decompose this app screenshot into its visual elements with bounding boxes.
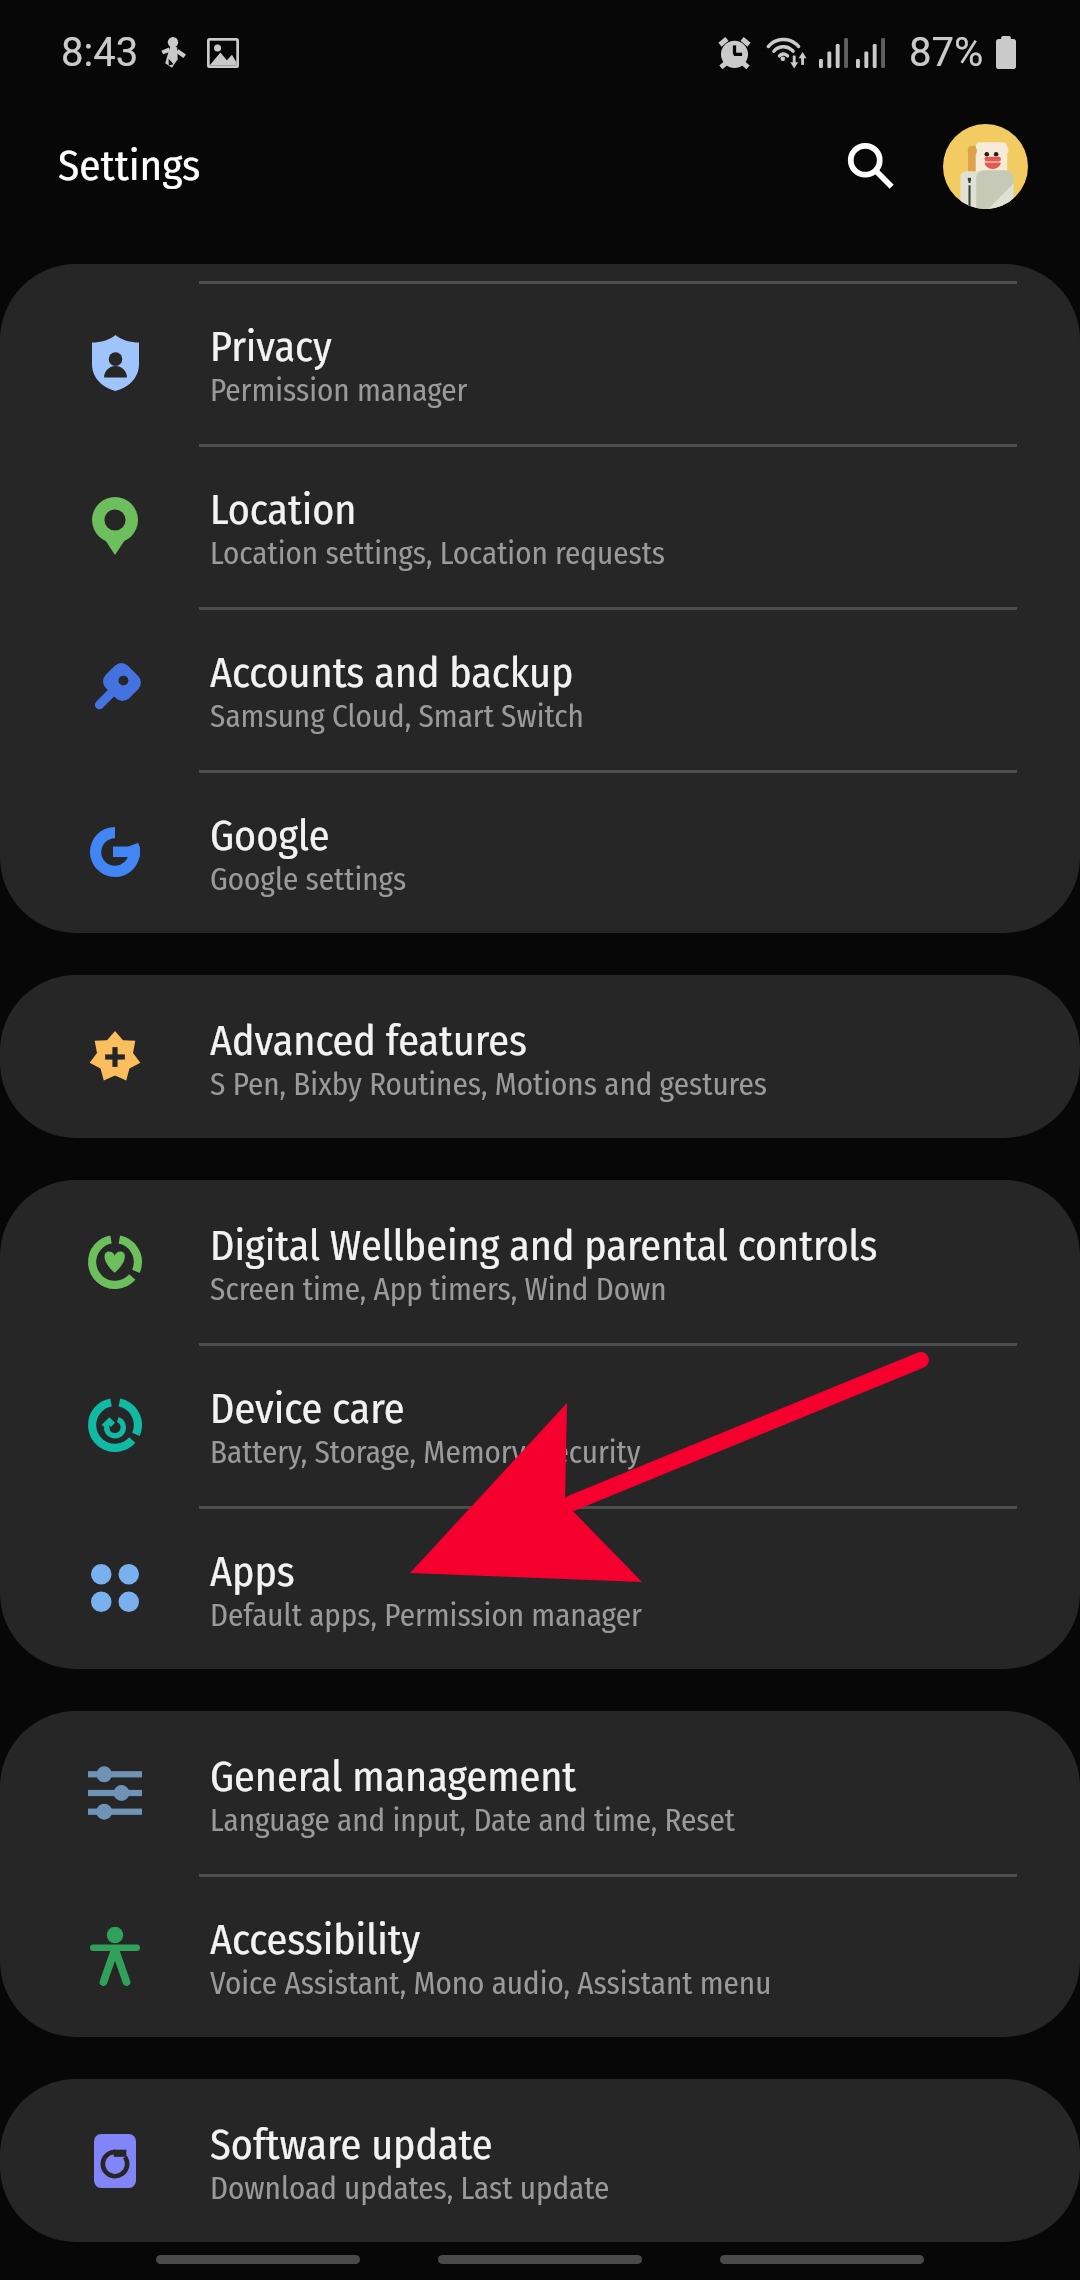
button[interactable]: Back	[720, 2255, 924, 2264]
staticText: Apps	[210, 1547, 295, 1597]
staticText: Battery, Storage, Memory, Security	[210, 1434, 641, 1471]
staticText: Screen time, App timers, Wind Down	[210, 1271, 667, 1308]
button[interactable]: Digital Wellbeing and parental controls	[0, 1180, 1080, 1343]
staticText: Location	[210, 485, 357, 535]
staticText: Default apps, Permission manager	[210, 1597, 642, 1634]
button[interactable]: Search	[821, 116, 921, 216]
staticText: Language and input, Date and time, Reset	[210, 1802, 735, 1839]
staticText: Accessibility	[210, 1915, 421, 1965]
staticText: Device care	[210, 1384, 405, 1434]
staticText: Location settings, Location requests	[210, 535, 666, 572]
staticText: Digital Wellbeing and parental controls	[210, 1221, 878, 1271]
button[interactable]: Accessibility	[0, 1874, 1080, 2037]
staticText: General management	[210, 1752, 577, 1802]
staticText: Google settings	[210, 861, 407, 898]
button[interactable]: Account	[935, 116, 1035, 216]
staticText: Privacy	[210, 322, 332, 372]
staticText: Samsung Cloud, Smart Switch	[210, 698, 584, 735]
button[interactable]: Device care	[0, 1343, 1080, 1506]
button[interactable]: Location	[0, 444, 1080, 607]
staticText: Google	[210, 811, 330, 861]
button[interactable]: Advanced features	[0, 975, 1080, 1138]
staticText: Settings	[58, 140, 201, 192]
staticText: Download updates, Last update	[210, 2170, 610, 2207]
button[interactable]: Privacy	[0, 281, 1080, 444]
button[interactable]: Home	[438, 2255, 642, 2264]
button[interactable]: Software update	[0, 2079, 1080, 2242]
staticText: Permission manager	[210, 372, 468, 409]
button[interactable]: Recents	[156, 2255, 360, 2264]
staticText: Voice Assistant, Mono audio, Assistant m…	[210, 1965, 772, 2002]
staticText: Advanced features	[210, 1016, 527, 1066]
staticText: Accounts and backup	[210, 648, 574, 698]
staticText: 87%	[909, 29, 984, 76]
button[interactable]: General management	[0, 1711, 1080, 1874]
button[interactable]: Accounts and backup	[0, 607, 1080, 770]
button[interactable]: Google	[0, 770, 1080, 933]
button[interactable]: Apps	[0, 1506, 1080, 1669]
staticText: S Pen, Bixby Routines, Motions and gestu…	[210, 1066, 768, 1103]
staticText: Software update	[210, 2120, 493, 2170]
staticText: 8:43	[61, 29, 139, 76]
